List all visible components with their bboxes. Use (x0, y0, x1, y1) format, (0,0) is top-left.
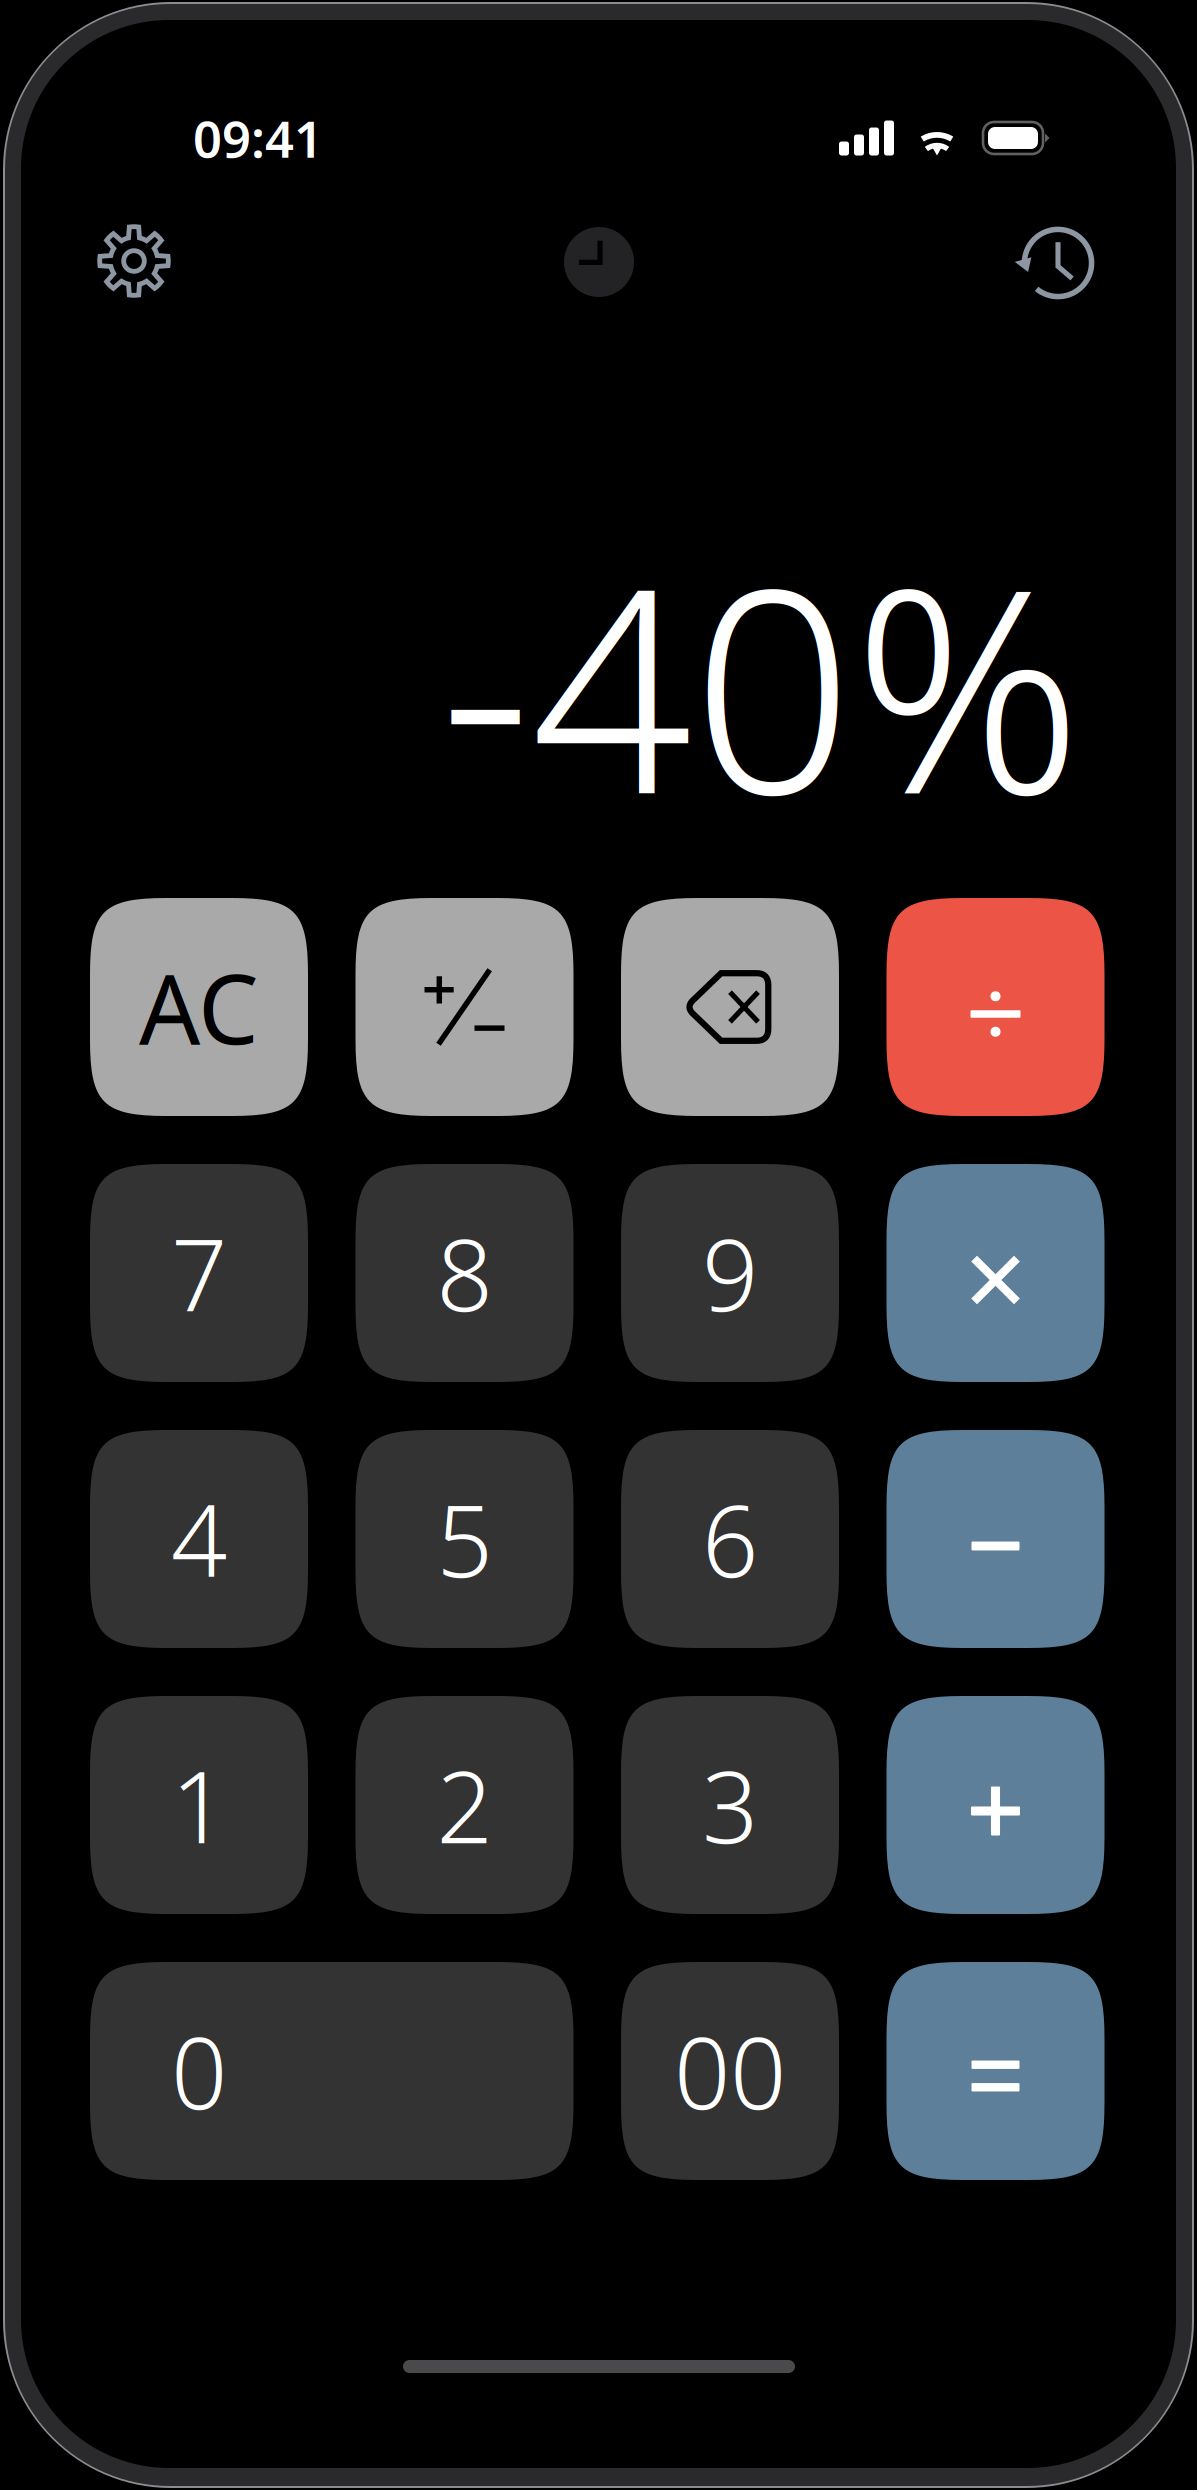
button[interactable]: 7 (90, 1164, 308, 1382)
button[interactable]: 00 (621, 1962, 839, 2180)
staticText: -40% (440, 496, 1083, 871)
button[interactable]: 1 (90, 1696, 308, 1914)
button[interactable]: 5 (355, 1430, 573, 1648)
staticText: 0 (171, 2005, 227, 2136)
staticText: 3 (702, 1739, 758, 1870)
button[interactable]: Backspace (621, 898, 839, 1116)
staticText: 7 (171, 1207, 227, 1338)
button[interactable]: AC (90, 898, 308, 1116)
staticText: 1 (171, 1739, 227, 1870)
button[interactable]: 6 (621, 1430, 839, 1648)
button[interactable]: Plus minus (355, 898, 573, 1116)
button[interactable]: Plus (886, 1696, 1104, 1914)
staticText: 8 (436, 1207, 492, 1338)
button[interactable]: History (999, 204, 1117, 322)
staticText: 9 (702, 1207, 758, 1338)
button[interactable]: 8 (355, 1164, 573, 1382)
staticText: 4 (171, 1473, 227, 1604)
button[interactable]: Minus (886, 1430, 1104, 1648)
staticText: 5 (436, 1473, 492, 1604)
button[interactable]: 3 (621, 1696, 839, 1914)
staticText: 6 (702, 1473, 758, 1604)
staticText: AC (139, 943, 259, 1071)
button[interactable]: Divide (886, 898, 1104, 1116)
staticText: 00 (674, 2005, 786, 2136)
button[interactable]: 4 (90, 1430, 308, 1648)
button[interactable]: 0 (90, 1962, 573, 2180)
staticText: 2 (436, 1739, 492, 1870)
button[interactable]: 9 (621, 1164, 839, 1382)
button[interactable]: Equals (886, 1962, 1104, 2180)
button[interactable]: 2 (355, 1696, 573, 1914)
button[interactable]: Multiply (886, 1164, 1104, 1382)
staticText: 09:41 (193, 104, 323, 172)
button[interactable]: Settings (75, 202, 193, 320)
